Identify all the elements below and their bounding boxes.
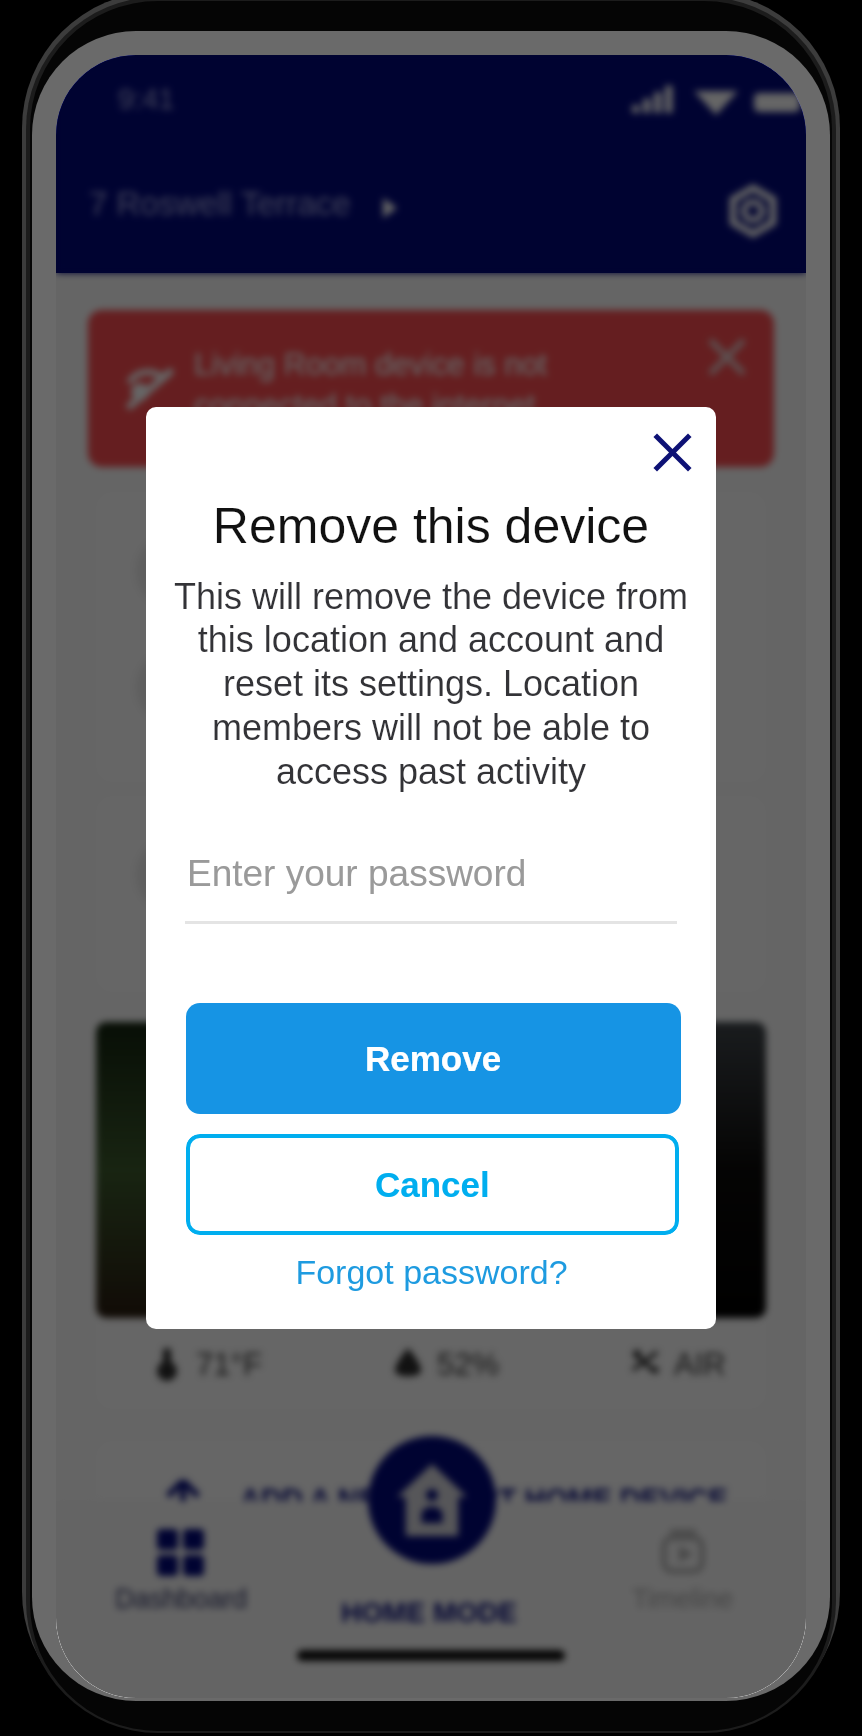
- staticText: Forgot password?: [295, 1253, 568, 1291]
- button[interactable]: Timeline: [583, 1529, 783, 1614]
- staticText: Front Door: [236, 852, 385, 887]
- button[interactable]: Dismiss: [700, 330, 754, 384]
- button[interactable]: Close: [640, 420, 704, 484]
- staticText: Living Room: [236, 548, 409, 583]
- staticText: AIR: [674, 1347, 726, 1382]
- button[interactable]: Settings: [720, 178, 786, 244]
- staticText: Remove: [365, 1039, 502, 1078]
- staticText: Thermostat: [236, 664, 393, 699]
- staticText: Cancel: [375, 1165, 490, 1204]
- button[interactable]: Home mode: [368, 1436, 496, 1564]
- button[interactable]: Front Door: [96, 796, 766, 992]
- staticText: 7 Roswell Terrace: [89, 185, 351, 222]
- button[interactable]: Enter your password: [185, 847, 677, 924]
- staticText: Timeline: [632, 1584, 734, 1614]
- staticText: This will remove the device from this lo…: [156, 576, 706, 792]
- staticText: HOME MODE: [298, 1597, 560, 1628]
- button[interactable]: [96, 1022, 416, 1318]
- staticText: 52%: [437, 1347, 500, 1382]
- staticText: Dashboard: [115, 1584, 248, 1614]
- staticText: 9:41: [118, 83, 175, 115]
- button[interactable]: Remove: [186, 1003, 681, 1114]
- button[interactable]: Living Room: [96, 492, 766, 782]
- button[interactable]: Forgot password?: [271, 1242, 591, 1302]
- staticText: Remove this device: [146, 498, 716, 554]
- button[interactable]: Cancel: [186, 1134, 679, 1235]
- button[interactable]: ADD A NEW SMART HOME DEVICE: [96, 1441, 766, 1563]
- staticText: ADD A NEW SMART HOME DEVICE: [240, 1483, 728, 1515]
- button[interactable]: Dashboard: [81, 1529, 281, 1614]
- staticText: Enter your password: [187, 853, 527, 894]
- staticText: 71°F: [196, 1347, 262, 1382]
- button[interactable]: Living Room device is not connected to t…: [88, 310, 774, 467]
- staticText: Living Room device is not connected to t…: [194, 347, 548, 422]
- button[interactable]: [428, 1022, 766, 1318]
